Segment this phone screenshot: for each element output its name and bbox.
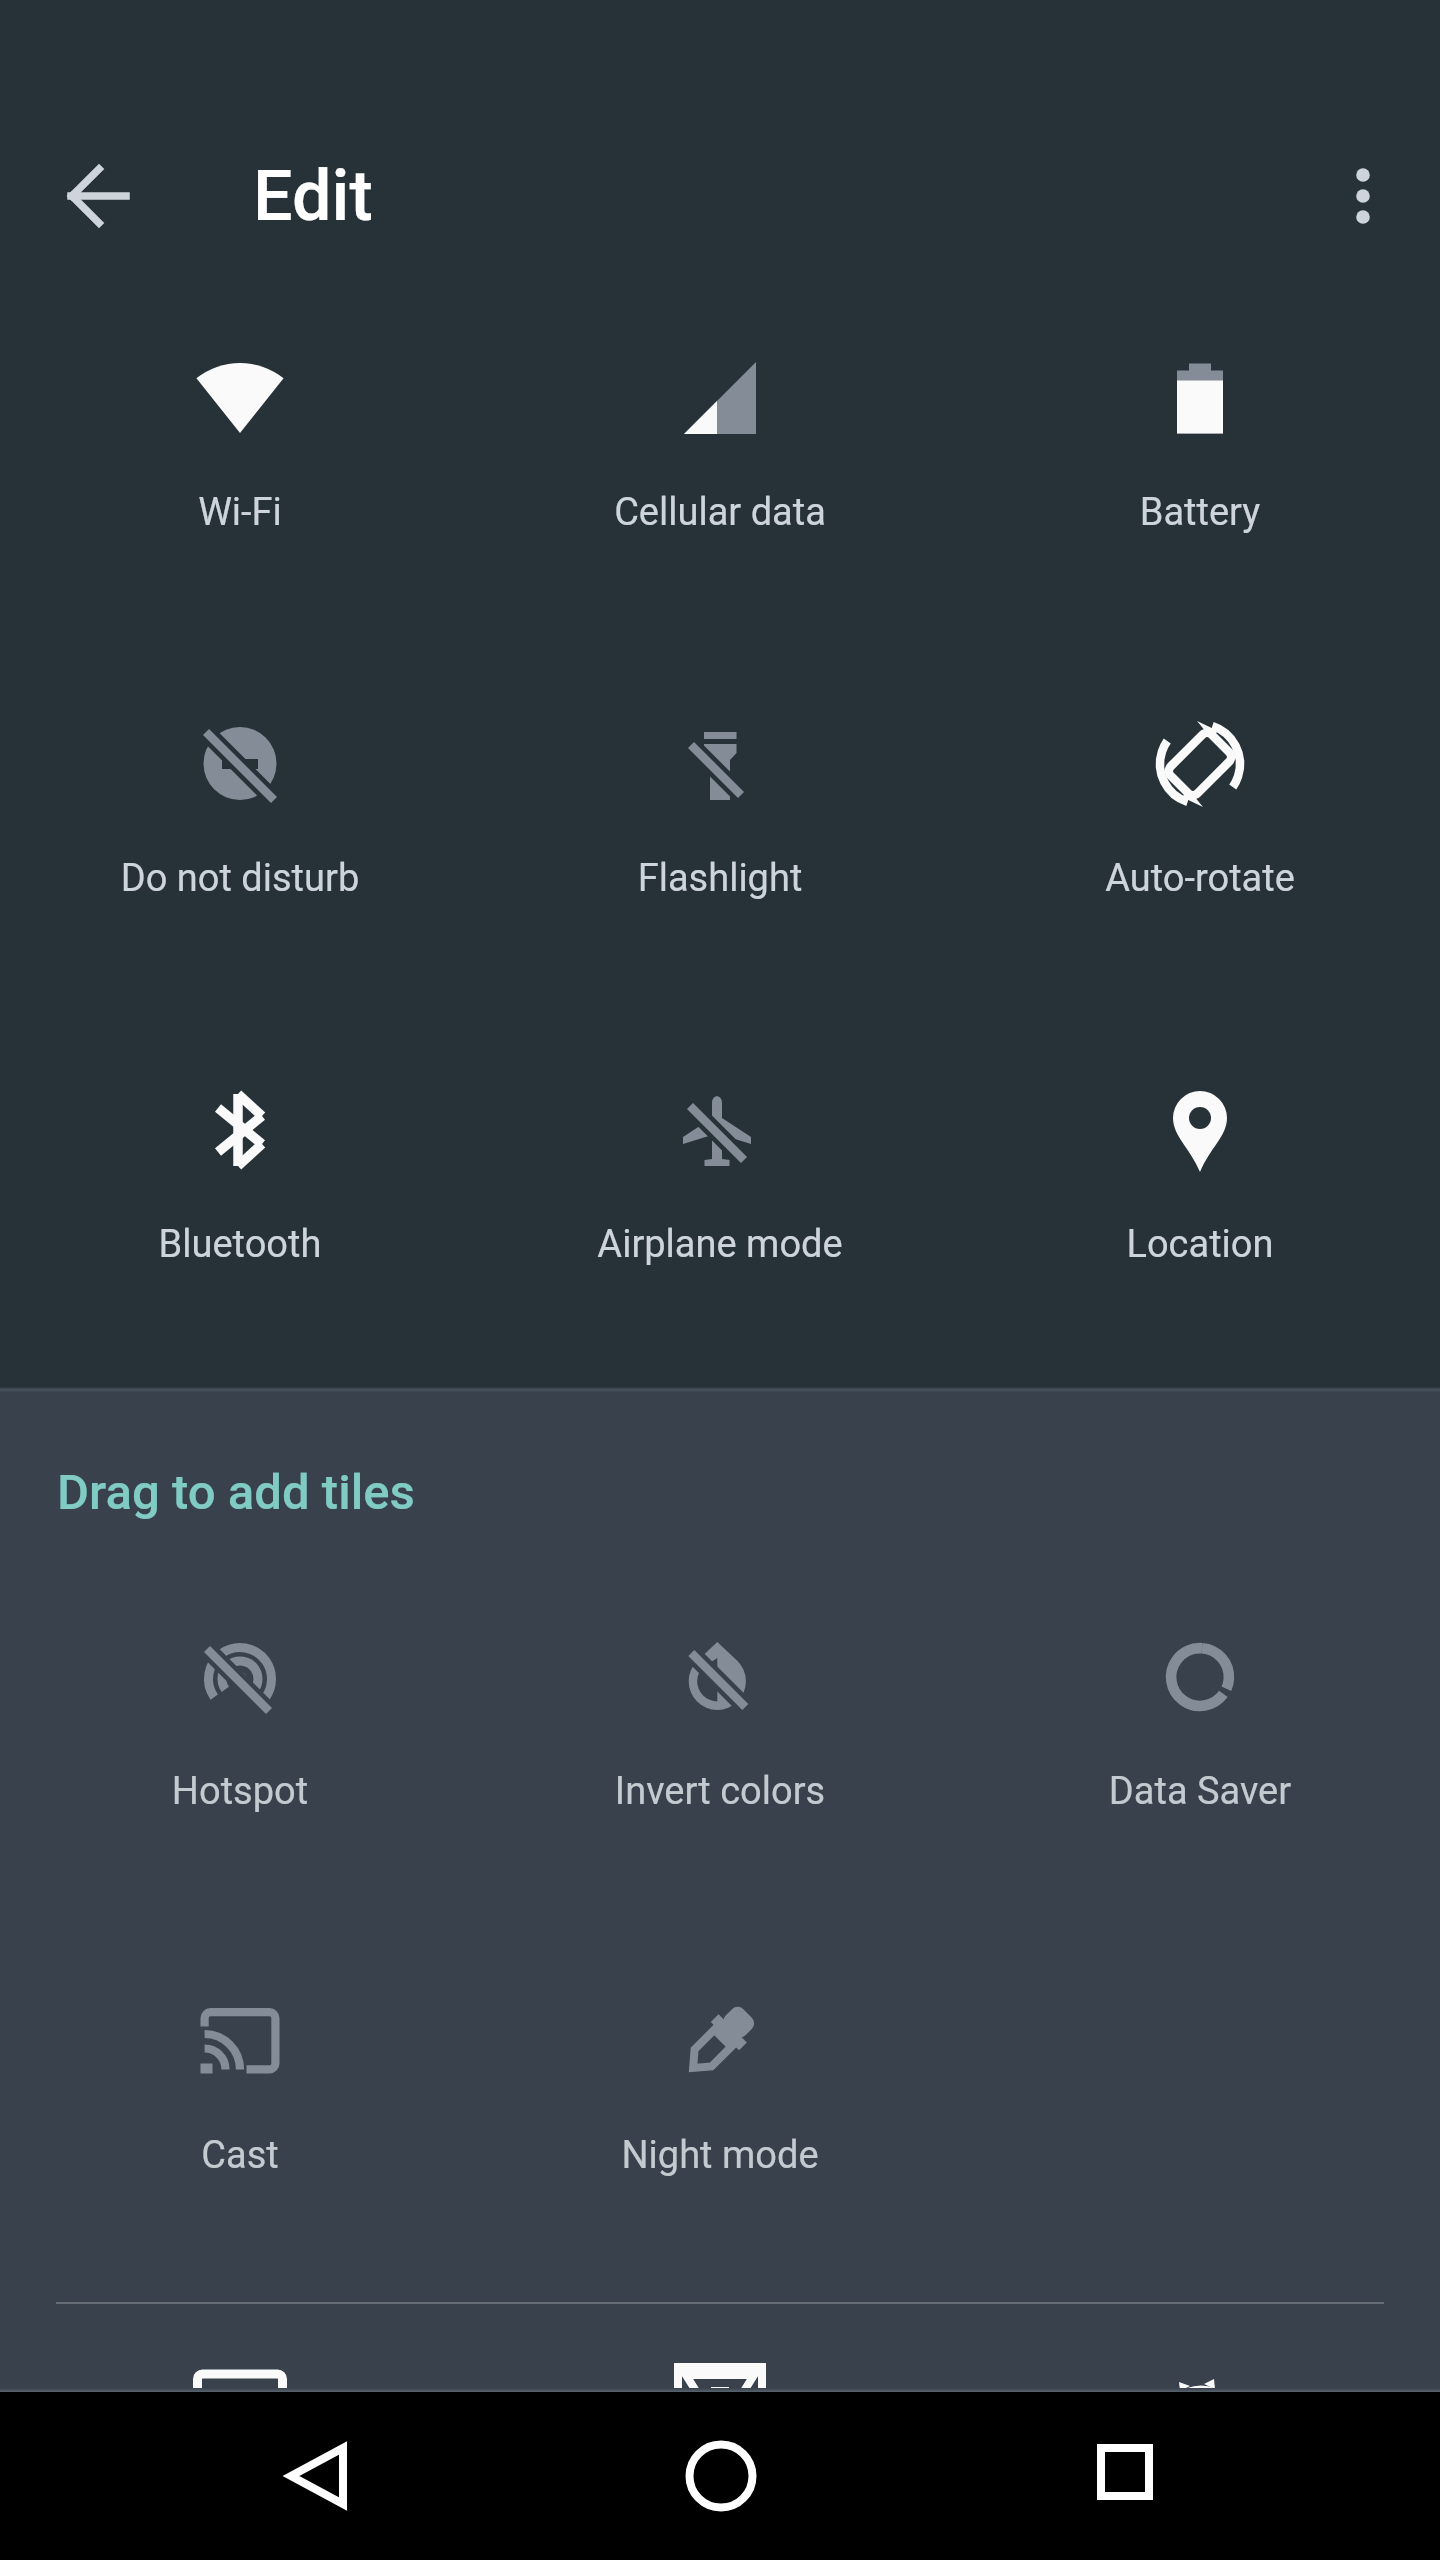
button[interactable]: Battery xyxy=(1000,288,1400,538)
button[interactable]: Auto-rotate xyxy=(1000,654,1400,904)
staticText: Cast xyxy=(40,2133,440,2178)
staticText: Night mode xyxy=(520,2133,920,2178)
staticText: Do not disturb xyxy=(40,856,440,901)
button[interactable]: Hotspot xyxy=(40,1567,440,1817)
staticText: Auto-rotate xyxy=(1000,856,1400,901)
button[interactable]: More options xyxy=(1299,132,1427,260)
button[interactable]: Cast xyxy=(40,1931,440,2181)
button[interactable]: Bluetooth xyxy=(40,1020,440,1270)
button[interactable]: Quick settings tile xyxy=(1000,2291,1400,2541)
staticText: Drag to add tiles xyxy=(57,1464,415,1521)
staticText: Wi-Fi xyxy=(40,490,440,535)
button[interactable]: Flashlight xyxy=(520,654,920,904)
button[interactable]: Night mode xyxy=(520,1931,920,2181)
staticText: Data Saver xyxy=(1000,1769,1400,1814)
button[interactable]: Wi-Fi xyxy=(40,288,440,538)
staticText: Cellular data xyxy=(520,490,920,535)
button[interactable]: Do not disturb xyxy=(40,654,440,904)
staticText: Bluetooth xyxy=(40,1222,440,1267)
button[interactable]: Location xyxy=(1000,1020,1400,1270)
button[interactable]: Home xyxy=(637,2396,805,2556)
button[interactable]: Quick settings tile xyxy=(520,2291,920,2541)
staticText: Flashlight xyxy=(520,856,920,901)
staticText: Hotspot xyxy=(40,1769,440,1814)
staticText: Location xyxy=(1000,1222,1400,1267)
button[interactable]: Quick settings tile xyxy=(40,2291,440,2541)
button[interactable]: Invert colors xyxy=(520,1567,920,1817)
staticText: Invert colors xyxy=(520,1769,920,1814)
button[interactable]: Navigate up xyxy=(34,132,162,260)
button[interactable]: Cellular data xyxy=(520,288,920,538)
staticText: Battery xyxy=(1000,490,1400,535)
button[interactable]: Back xyxy=(233,2396,401,2556)
staticText: Edit xyxy=(253,155,373,237)
button[interactable]: Recent apps xyxy=(1041,2396,1209,2556)
button[interactable]: Airplane mode xyxy=(520,1020,920,1270)
staticText: Airplane mode xyxy=(520,1222,920,1267)
button[interactable]: Data Saver xyxy=(1000,1567,1400,1817)
